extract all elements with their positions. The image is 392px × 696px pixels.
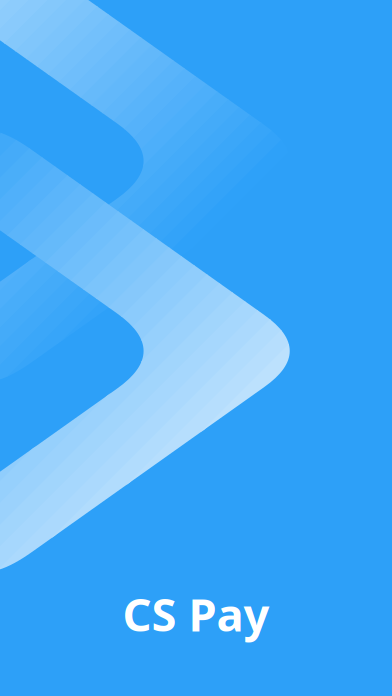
staticText: CS Pay [122,584,269,644]
